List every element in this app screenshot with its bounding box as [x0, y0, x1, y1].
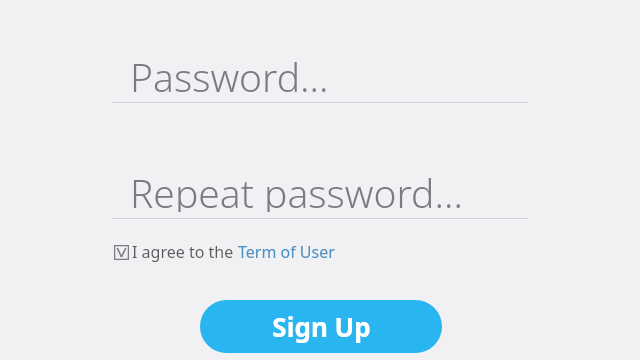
button[interactable]: I agree, checked	[110, 238, 339, 266]
button[interactable]: Password…	[112, 50, 528, 103]
button[interactable]: Sign Up	[200, 300, 442, 353]
button[interactable]: Term of User	[238, 241, 335, 263]
staticText: Repeat password…	[130, 166, 463, 212]
staticText: Password…	[130, 50, 329, 96]
staticText: Sign Up	[272, 309, 371, 344]
other: I agree, checked	[114, 245, 129, 260]
button[interactable]: Repeat password…	[112, 166, 528, 219]
staticText: I agree to the	[132, 241, 238, 263]
